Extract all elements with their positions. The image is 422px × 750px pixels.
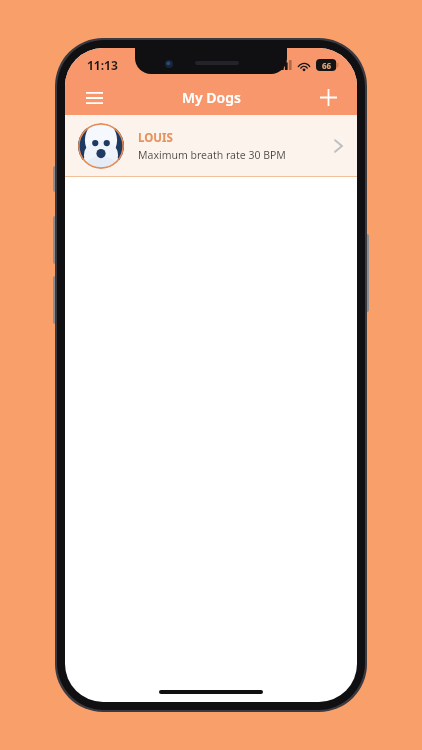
staticText: My Dogs xyxy=(182,88,241,107)
staticText: 66 xyxy=(322,60,332,71)
button[interactable]: Menu xyxy=(75,80,113,115)
staticText: 11:13 xyxy=(87,57,118,73)
staticText: Maximum breath rate 30 BPM xyxy=(138,148,286,162)
button[interactable]: LOUIS xyxy=(65,115,357,176)
staticText: LOUIS xyxy=(138,130,173,146)
button[interactable]: Add dog xyxy=(309,80,347,115)
